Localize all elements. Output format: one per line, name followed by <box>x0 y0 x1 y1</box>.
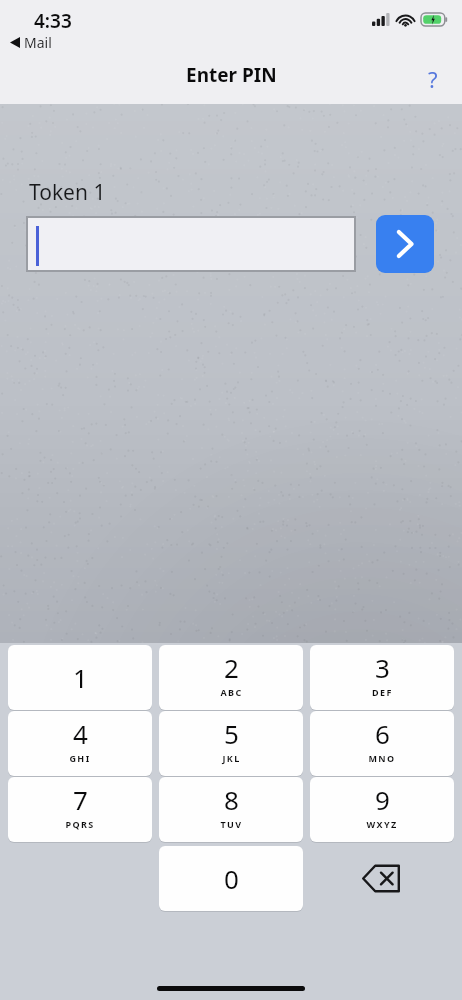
staticText: 9 <box>375 782 390 817</box>
staticText: 1 <box>73 660 88 695</box>
staticText: JKL <box>222 752 241 764</box>
staticText: 8 <box>224 782 239 817</box>
staticText: WXYZ <box>366 818 398 830</box>
button[interactable]: Delete <box>310 846 454 911</box>
staticText: 7 <box>73 782 88 817</box>
button[interactable]: 4 <box>8 711 152 776</box>
button[interactable]: 3 <box>310 645 454 710</box>
button[interactable]: Mail <box>8 32 54 53</box>
staticText: 0 <box>224 861 239 896</box>
staticText: 6 <box>375 716 390 751</box>
staticText: PQRS <box>65 818 95 830</box>
button[interactable]: Help <box>416 62 450 96</box>
staticText: MNO <box>368 752 396 764</box>
button[interactable]: 5 <box>159 711 303 776</box>
staticText: Token 1 <box>29 178 106 207</box>
staticText: 4 <box>73 716 88 751</box>
button[interactable]: 9 <box>310 777 454 842</box>
staticText: 3 <box>375 650 390 685</box>
staticText: 5 <box>224 716 239 751</box>
staticText: DEF <box>372 686 393 698</box>
staticText: 2 <box>224 650 239 685</box>
staticText: GHI <box>69 752 91 764</box>
button[interactable]: 2 <box>159 645 303 710</box>
button[interactable]: Next <box>376 215 434 273</box>
staticText: ? <box>428 64 438 94</box>
staticText: Mail <box>24 33 52 52</box>
button[interactable]: 0 <box>159 846 303 911</box>
staticText: Enter PIN <box>186 62 277 88</box>
button[interactable]: 1 <box>8 645 152 710</box>
staticText: ABC <box>220 686 243 698</box>
button[interactable]: 6 <box>310 711 454 776</box>
staticText: TUV <box>220 818 243 830</box>
staticText: 4:33 <box>34 8 72 34</box>
button[interactable]: 8 <box>159 777 303 842</box>
button[interactable]: 7 <box>8 777 152 842</box>
button[interactable] <box>28 218 354 270</box>
